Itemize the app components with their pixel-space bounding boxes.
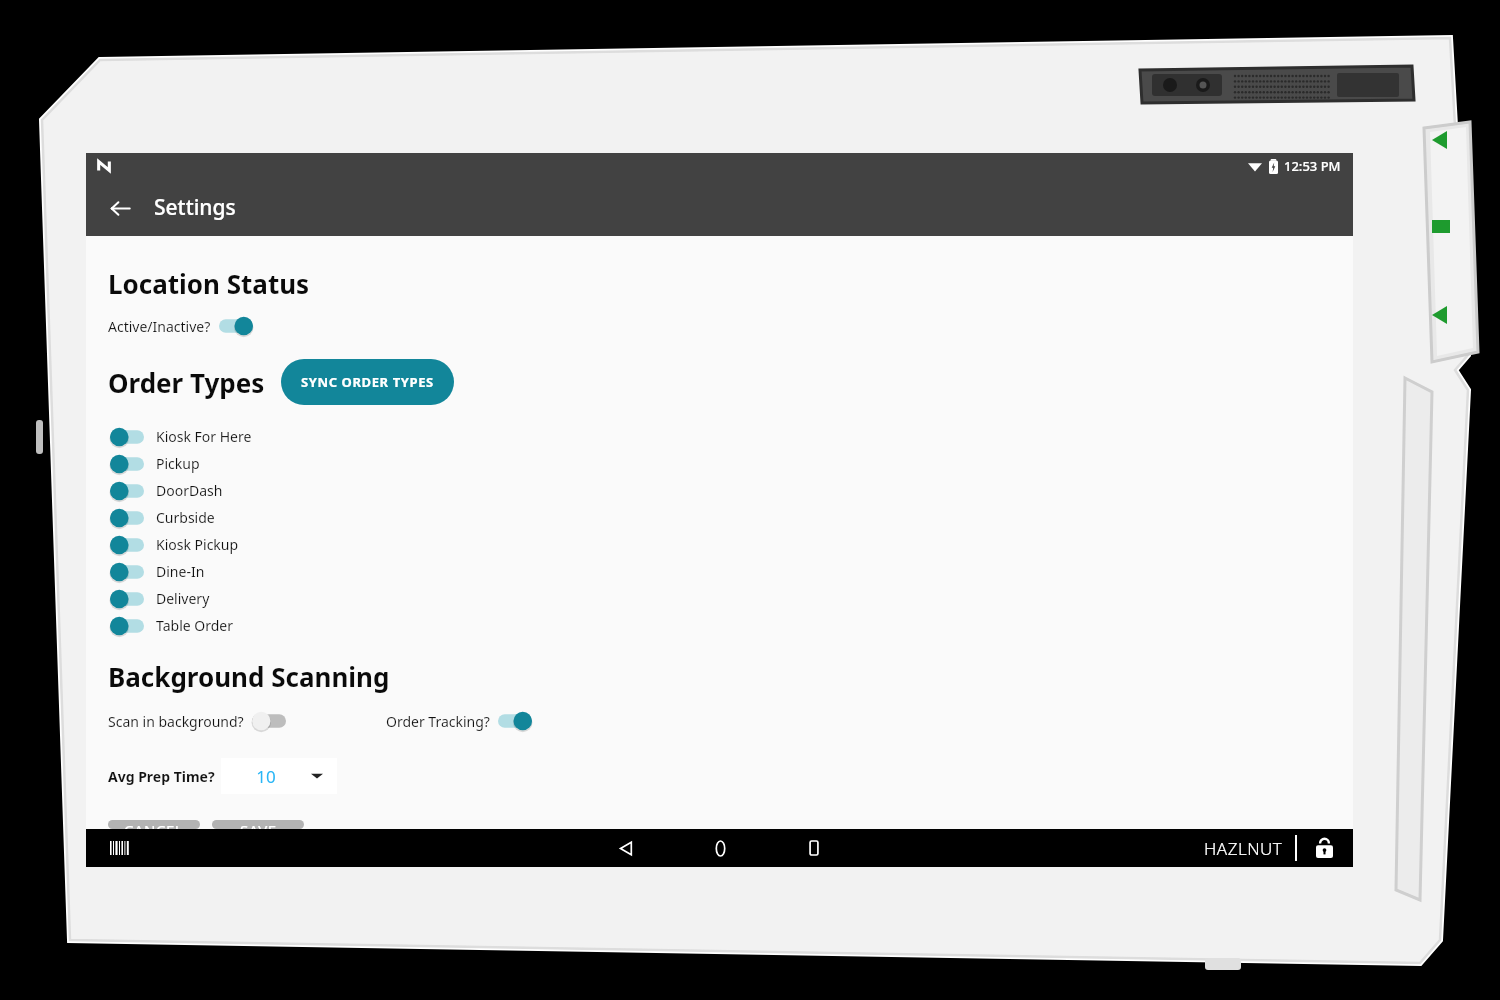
staticText: 12:53 PM [1284,157,1341,175]
staticText: Location Status [108,266,310,301]
button[interactable]: Pickup [108,450,208,477]
staticText: SAVE [240,820,277,829]
button[interactable]: Order Tracking? [386,710,532,732]
button[interactable]: Recent apps [792,829,836,867]
button[interactable]: Kiosk For Here [108,423,260,450]
button[interactable]: Dine-In [108,558,213,585]
button[interactable]: Delivery [108,585,218,612]
button[interactable]: Curbside [108,504,223,531]
staticText: DoorDash [156,481,223,500]
staticText: Background Scanning [108,659,390,694]
staticText: Scan in background? [108,712,244,731]
staticText: Dine-In [156,562,205,581]
button[interactable]: Lock [1309,833,1339,863]
button[interactable]: SYNC ORDER TYPES [281,359,454,405]
button[interactable]: DoorDash [108,477,231,504]
other: Scan barcode [110,841,130,855]
staticText: Settings [154,193,236,222]
staticText: Kiosk For Here [156,427,252,446]
staticText: 10 [221,765,311,788]
button[interactable]: Back [604,829,648,867]
staticText: Curbside [156,508,215,527]
button[interactable]: Back [100,188,140,228]
button[interactable]: Kiosk Pickup [108,531,247,558]
button[interactable]: Active/Inactive? [108,315,259,337]
staticText: CANCEL [124,820,184,829]
staticText: SYNC ORDER TYPES [301,373,434,391]
button[interactable]: 10 [221,758,337,794]
staticText: Table Order [156,616,233,635]
button[interactable]: Scan in background? [108,710,286,732]
staticText: Active/Inactive? [108,317,211,336]
staticText: Avg Prep Time? [108,767,215,786]
button[interactable]: Home [698,829,742,867]
button[interactable]: CANCEL [108,820,200,829]
button[interactable]: SAVE [212,820,304,829]
staticText: Kiosk Pickup [156,535,239,554]
staticText: Pickup [156,454,200,473]
staticText: Delivery [156,589,210,608]
staticText: Order Types [108,365,265,400]
button[interactable]: Table Order [108,612,241,639]
staticText: Order Tracking? [386,712,490,731]
button[interactable]: HAZLNUT [1204,837,1283,860]
